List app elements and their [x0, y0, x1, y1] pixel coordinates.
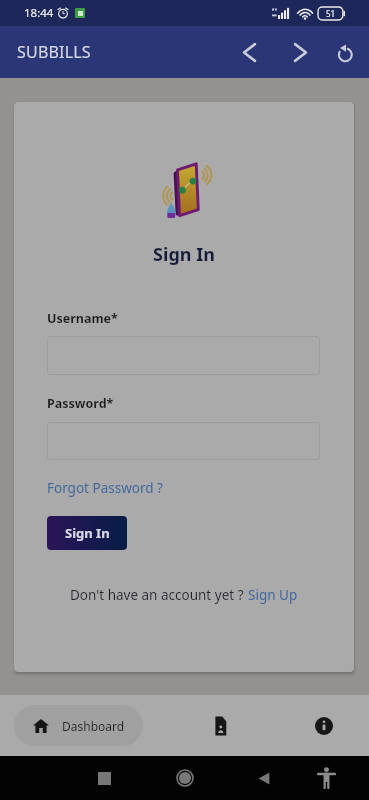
staticText: Password*	[47, 395, 114, 412]
button[interactable]: Refresh	[326, 33, 364, 71]
staticText: Sign In	[65, 524, 110, 542]
button[interactable]	[47, 422, 320, 460]
button[interactable]: Back	[230, 33, 268, 71]
staticText: Username*	[47, 310, 118, 327]
staticText: SUBBILLS	[17, 41, 91, 63]
button[interactable]: Recents	[87, 761, 121, 795]
button[interactable]: Dashboard	[14, 705, 143, 746]
button[interactable]	[47, 336, 320, 375]
button[interactable]: Home	[168, 761, 202, 795]
button[interactable]: About	[302, 704, 346, 748]
staticText: Dashboard	[62, 718, 125, 734]
staticText: 18:44	[24, 5, 54, 21]
button[interactable]: Back	[247, 761, 281, 795]
button[interactable]: Accessibility	[309, 761, 343, 795]
button[interactable]: Forward	[281, 33, 319, 71]
button[interactable]: Sign Up	[248, 586, 298, 604]
button[interactable]: Forgot Password ?	[47, 479, 163, 497]
button[interactable]: Sign In	[47, 516, 127, 550]
staticText: Forgot Password ?	[47, 479, 163, 497]
staticText: Don't have an account yet ?	[70, 586, 244, 604]
staticText: Sign In	[14, 242, 354, 267]
staticText: 51	[326, 8, 336, 19]
button[interactable]: Bills	[198, 704, 242, 748]
staticText: Sign Up	[248, 586, 298, 604]
